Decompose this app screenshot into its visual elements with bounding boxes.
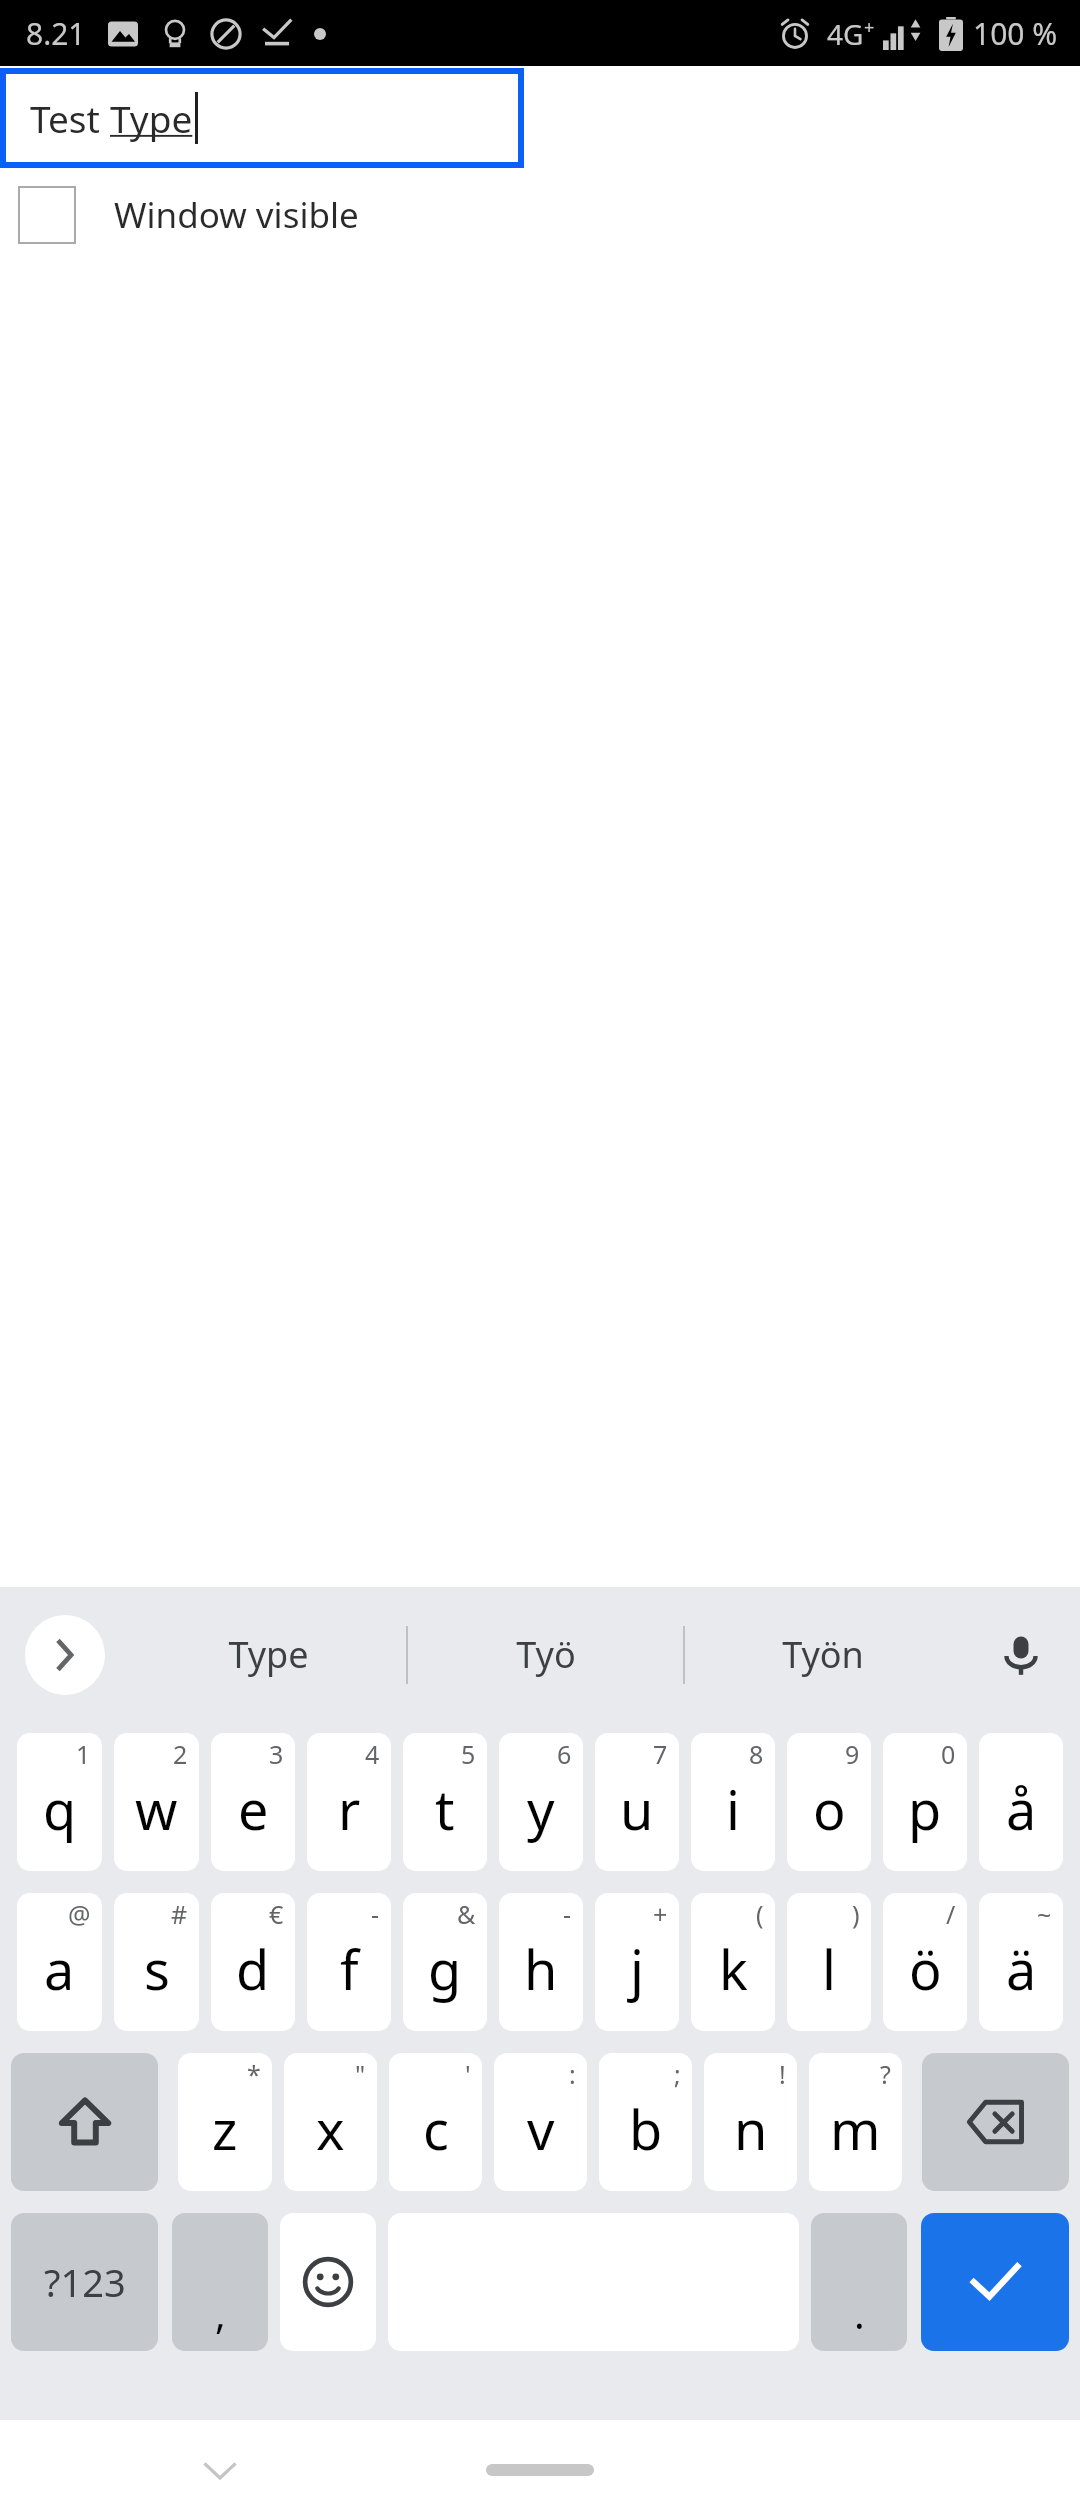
staticText: 8: [749, 1737, 764, 1771]
staticText: i: [726, 1772, 740, 1846]
staticText: 8.21: [26, 13, 86, 54]
button[interactable]: Expand toolbar: [25, 1615, 105, 1695]
button[interactable]: Enter: [921, 2213, 1069, 2351]
button[interactable]: 7: [595, 1733, 679, 1871]
button[interactable]: Home: [486, 2464, 594, 2476]
staticText: c: [423, 2092, 449, 2166]
button[interactable]: Test: [0, 68, 524, 168]
staticText: ': [465, 2057, 471, 2091]
button[interactable]: ): [787, 1893, 871, 2031]
button[interactable]: Voice input: [986, 1620, 1056, 1690]
button[interactable]: ;: [599, 2053, 692, 2191]
staticText: Window visible: [114, 191, 359, 239]
staticText: y: [527, 1772, 555, 1846]
button[interactable]: -: [307, 1893, 391, 2031]
button[interactable]: Työn: [685, 1587, 960, 1722]
button[interactable]: Shift: [11, 2053, 158, 2191]
staticText: (: [756, 1897, 764, 1931]
staticText: 100 %: [973, 13, 1058, 54]
staticText: ,: [215, 2286, 226, 2340]
button[interactable]: 9: [787, 1733, 871, 1871]
button[interactable]: 3: [211, 1733, 295, 1871]
staticText: 4G: [827, 15, 864, 53]
staticText: 4: [365, 1737, 380, 1771]
button[interactable]: å: [979, 1733, 1063, 1871]
button[interactable]: !: [704, 2053, 797, 2191]
staticText: /: [946, 1897, 956, 1931]
staticText: d: [236, 1932, 270, 2006]
staticText: j: [630, 1932, 644, 2006]
staticText: p: [908, 1772, 942, 1846]
staticText: Test: [30, 93, 110, 143]
staticText: Työ: [516, 1630, 576, 1679]
staticText: u: [620, 1772, 654, 1846]
button[interactable]: 1: [17, 1733, 102, 1871]
staticText: &: [457, 1897, 476, 1931]
staticText: b: [629, 2092, 663, 2166]
staticText: ): [852, 1897, 860, 1931]
staticText: ?123: [44, 2256, 126, 2308]
button[interactable]: €: [211, 1893, 295, 2031]
staticText: Type: [110, 93, 193, 143]
staticText: ;: [674, 2057, 681, 2091]
button[interactable]: Hide keyboard: [180, 2430, 260, 2510]
staticText: l: [822, 1932, 836, 2006]
staticText: ~: [1037, 1897, 1052, 1931]
button[interactable]: /: [883, 1893, 967, 2031]
staticText: :: [569, 2057, 576, 2091]
button[interactable]: #: [114, 1893, 199, 2031]
button[interactable]: ,: [172, 2213, 268, 2351]
staticText: €: [269, 1897, 284, 1931]
staticText: ?: [880, 2057, 891, 2091]
button[interactable]: 5: [403, 1733, 487, 1871]
staticText: n: [734, 2092, 768, 2166]
staticText: Type: [228, 1630, 309, 1679]
staticText: ö: [909, 1932, 942, 2006]
button[interactable]: 6: [499, 1733, 583, 1871]
staticText: 3: [269, 1737, 284, 1771]
button[interactable]: (: [691, 1893, 775, 2031]
button[interactable]: @: [17, 1893, 102, 2031]
button[interactable]: ?123: [11, 2213, 158, 2351]
staticText: m: [830, 2092, 881, 2166]
staticText: f: [340, 1932, 359, 2006]
button[interactable]: Backspace: [922, 2053, 1069, 2191]
staticText: Työn: [782, 1630, 864, 1679]
staticText: z: [212, 2092, 238, 2166]
button[interactable]: Emoji: [280, 2213, 376, 2351]
staticText: 7: [653, 1737, 668, 1771]
staticText: t: [435, 1772, 455, 1846]
staticText: s: [144, 1932, 170, 2006]
staticText: r: [338, 1772, 361, 1846]
staticText: ä: [1006, 1932, 1037, 2006]
button[interactable]: +: [595, 1893, 679, 2031]
staticText: o: [813, 1772, 846, 1846]
staticText: +: [653, 1897, 668, 1931]
button[interactable]: Type: [130, 1587, 406, 1722]
staticText: q: [43, 1772, 77, 1846]
button[interactable]: *: [178, 2053, 272, 2191]
button[interactable]: .: [811, 2213, 907, 2351]
staticText: 9: [845, 1737, 860, 1771]
staticText: e: [238, 1772, 269, 1846]
button[interactable]: 0: [883, 1733, 967, 1871]
button[interactable]: Työ: [408, 1587, 683, 1722]
button[interactable]: :: [494, 2053, 587, 2191]
button[interactable]: -: [499, 1893, 583, 2031]
button[interactable]: ': [389, 2053, 482, 2191]
staticText: ": [355, 2057, 366, 2091]
button[interactable]: &: [403, 1893, 487, 2031]
staticText: !: [779, 2057, 786, 2091]
button[interactable]: ": [284, 2053, 377, 2191]
staticText: *: [247, 2057, 261, 2091]
button[interactable]: 8: [691, 1733, 775, 1871]
button[interactable]: ?: [809, 2053, 902, 2191]
button[interactable]: 2: [114, 1733, 199, 1871]
button[interactable]: 4: [307, 1733, 391, 1871]
button[interactable]: ~: [979, 1893, 1063, 2031]
staticText: 6: [557, 1737, 572, 1771]
staticText: .: [854, 2286, 865, 2340]
staticText: å: [1006, 1772, 1037, 1846]
button[interactable]: Window visible: [18, 186, 359, 244]
